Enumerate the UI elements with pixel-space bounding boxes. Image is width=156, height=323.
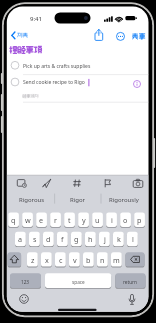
button[interactable] [15, 232, 26, 246]
staticText: t [68, 215, 71, 225]
staticText: z [31, 255, 35, 265]
staticText: v [73, 255, 77, 265]
staticText: Pick up arts & crafts supplies [23, 63, 91, 70]
staticText: Rigorously [109, 196, 139, 204]
button[interactable] [8, 191, 55, 206]
button[interactable] [129, 30, 147, 43]
staticText: h [88, 234, 93, 244]
button[interactable] [99, 232, 110, 246]
button[interactable] [127, 232, 138, 246]
button[interactable] [9, 29, 31, 42]
button[interactable] [124, 292, 140, 307]
button[interactable] [57, 232, 68, 246]
staticText: a [18, 234, 23, 244]
staticText: x [45, 255, 49, 265]
staticText: j [104, 234, 106, 244]
button[interactable] [69, 177, 84, 189]
staticText: w [25, 215, 31, 225]
staticText: b [86, 255, 91, 265]
button[interactable] [10, 273, 41, 288]
button[interactable] [85, 232, 96, 246]
staticText: l [132, 234, 134, 244]
button[interactable] [83, 252, 94, 266]
button[interactable] [9, 57, 139, 74]
staticText: k [117, 234, 121, 244]
button[interactable] [130, 177, 145, 189]
staticText: g [74, 234, 79, 244]
button[interactable] [120, 213, 131, 227]
staticText: Rigor [70, 196, 86, 204]
button[interactable] [27, 252, 38, 266]
staticText: n [100, 255, 105, 265]
staticText: f [61, 234, 64, 244]
button[interactable] [64, 213, 75, 227]
button[interactable] [55, 252, 66, 266]
staticText: d [46, 234, 51, 244]
staticText: i [111, 215, 113, 225]
button[interactable] [92, 213, 103, 227]
button[interactable] [97, 252, 108, 266]
staticText: q [11, 215, 16, 225]
button[interactable] [29, 232, 40, 246]
button[interactable] [78, 213, 89, 227]
button[interactable] [111, 252, 122, 266]
staticText: Rigorous [19, 196, 45, 204]
staticText: u [95, 215, 100, 225]
button[interactable] [131, 77, 144, 90]
button[interactable] [50, 213, 61, 227]
staticText: o [123, 215, 128, 225]
button[interactable] [99, 177, 114, 189]
button[interactable] [43, 232, 54, 246]
button[interactable] [36, 213, 47, 227]
button[interactable] [16, 292, 32, 307]
staticText: e [39, 215, 44, 225]
staticText: 9:41 [30, 15, 42, 23]
button[interactable] [39, 177, 54, 189]
button[interactable] [71, 232, 82, 246]
button[interactable] [115, 273, 145, 288]
staticText: Send cookie recipe to Rigo [23, 79, 85, 86]
button[interactable] [45, 273, 111, 288]
staticText: p [137, 215, 142, 225]
staticText: return [123, 279, 137, 285]
button[interactable] [134, 213, 145, 227]
button[interactable] [126, 252, 145, 266]
staticText: 123 [21, 279, 30, 285]
button[interactable] [9, 75, 129, 102]
button[interactable] [113, 232, 124, 246]
staticText: s [33, 234, 37, 244]
button[interactable] [8, 213, 19, 227]
button[interactable] [114, 30, 127, 43]
button[interactable] [92, 29, 105, 42]
button[interactable] [41, 252, 52, 266]
staticText: y [82, 215, 86, 225]
staticText: r [54, 215, 57, 225]
staticText: c [59, 255, 63, 265]
staticText: m [113, 255, 120, 265]
button[interactable] [55, 191, 101, 206]
button[interactable] [69, 252, 80, 266]
button[interactable] [101, 191, 147, 206]
button[interactable] [106, 213, 117, 227]
button[interactable] [22, 213, 33, 227]
button[interactable] [8, 252, 22, 266]
staticText: space [72, 279, 85, 285]
button[interactable] [14, 177, 29, 189]
